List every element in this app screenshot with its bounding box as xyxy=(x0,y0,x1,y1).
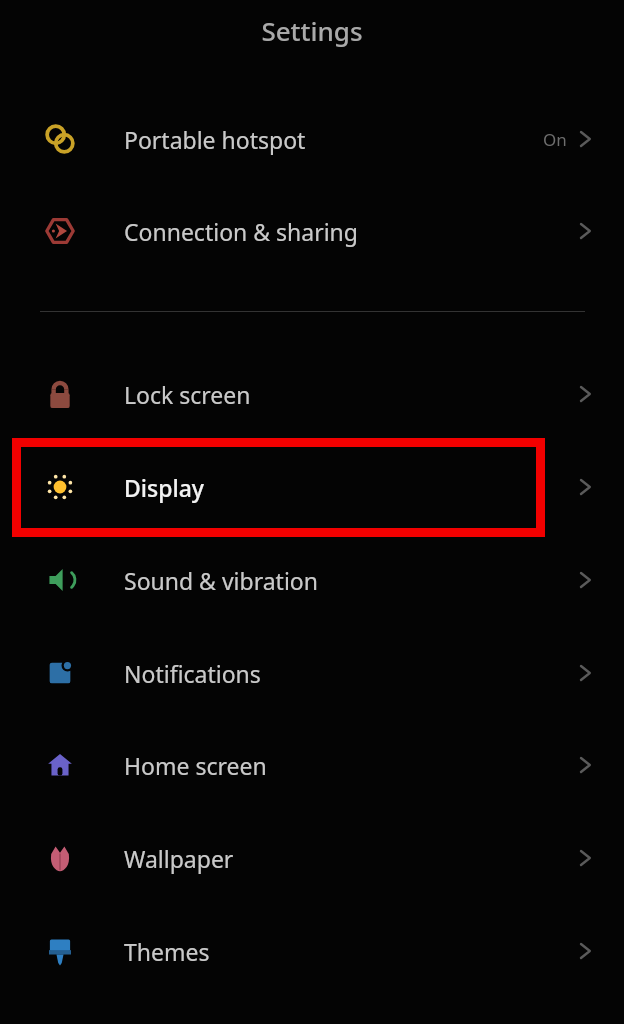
button[interactable]: Connection & sharing xyxy=(0,185,624,277)
staticText: Notifications xyxy=(124,658,261,689)
staticText: Wallpaper xyxy=(124,843,234,874)
button[interactable]: Sound & vibration xyxy=(0,534,624,626)
button[interactable]: Home screen xyxy=(0,719,624,811)
staticText: Display xyxy=(124,472,204,503)
staticText: Home screen xyxy=(124,750,267,781)
button[interactable]: Lock screen xyxy=(0,348,624,440)
button[interactable]: Wallpaper xyxy=(0,812,624,904)
staticText: Themes xyxy=(124,936,210,967)
staticText: Lock screen xyxy=(124,379,251,410)
staticText: Connection & sharing xyxy=(124,216,358,247)
button[interactable]: Display xyxy=(0,441,624,533)
button[interactable]: Themes xyxy=(0,905,624,997)
button[interactable]: Notifications xyxy=(0,627,624,719)
staticText: Settings xyxy=(0,13,624,48)
staticText: Portable hotspot xyxy=(124,124,306,155)
staticText: Sound & vibration xyxy=(124,565,318,596)
button[interactable]: Portable hotspot xyxy=(0,93,624,185)
staticText: On xyxy=(543,128,567,151)
